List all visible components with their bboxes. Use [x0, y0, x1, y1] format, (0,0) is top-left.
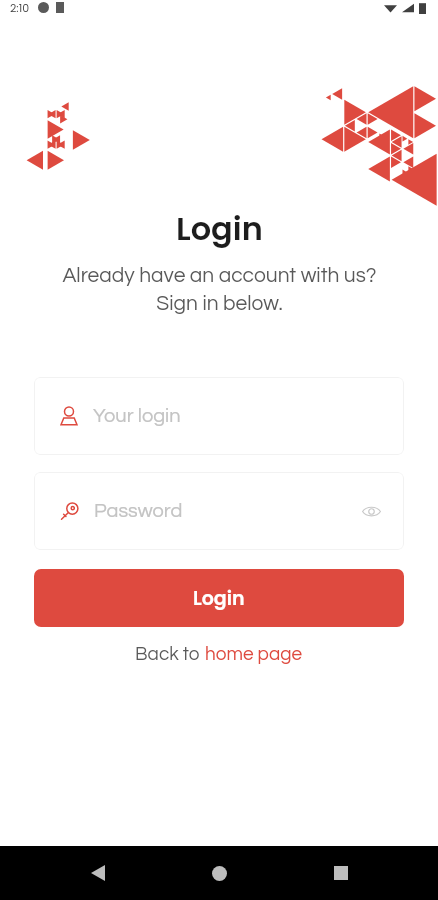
staticText: Already have an account with us? Sign in… [62, 265, 377, 315]
staticText: 2:10 [10, 0, 30, 15]
button[interactable]: Your login [34, 377, 404, 455]
button[interactable]: Show password [356, 496, 386, 526]
button[interactable]: Back [74, 849, 122, 897]
staticText: Your login [93, 406, 181, 427]
staticText: Login [176, 206, 263, 251]
staticText: Password [94, 501, 183, 522]
staticText: home page [205, 644, 303, 664]
staticText: Back to [135, 644, 205, 664]
button[interactable]: home page [205, 644, 303, 664]
staticText: Login [193, 585, 245, 612]
button[interactable]: Home [195, 849, 243, 897]
button[interactable]: Login [34, 569, 404, 627]
button[interactable]: Password [34, 472, 404, 550]
button[interactable]: Recents [317, 849, 365, 897]
